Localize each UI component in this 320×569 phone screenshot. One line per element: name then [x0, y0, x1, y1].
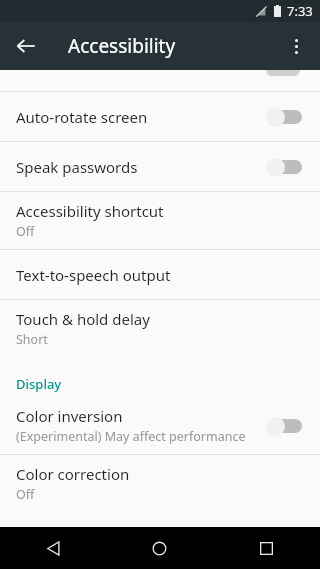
staticText: (Experimental) May affect performance [16, 428, 246, 445]
button[interactable]: Speak passwords [0, 142, 320, 191]
staticText: Auto-rotate screen [16, 107, 148, 127]
staticText: Touch & hold delay [16, 309, 150, 329]
button[interactable]: Auto-rotate screen [0, 92, 320, 141]
button[interactable]: More options [274, 24, 318, 68]
button[interactable]: Home [106, 527, 213, 569]
button[interactable]: Recent apps [213, 527, 320, 569]
staticText: Short [16, 331, 48, 348]
staticText: Color inversion [16, 406, 123, 426]
button[interactable]: Touch & hold delay [0, 300, 320, 357]
button[interactable]: Toggle [266, 157, 302, 177]
button[interactable]: Back [4, 24, 48, 68]
button[interactable]: Color inversion [0, 397, 320, 454]
button[interactable] [0, 70, 320, 92]
staticText: Accessibility shortcut [16, 201, 164, 221]
staticText: Off [16, 486, 35, 503]
button[interactable]: Toggle [266, 416, 302, 436]
staticText: Display [16, 375, 62, 393]
button[interactable]: Text-to-speech output [0, 250, 320, 299]
button[interactable]: Toggle [266, 107, 302, 127]
staticText: Color correction [16, 464, 130, 484]
staticText: Off [16, 223, 35, 240]
button[interactable]: Back [0, 527, 106, 569]
staticText: 7:33 [287, 2, 313, 20]
button[interactable]: Accessibility shortcut [0, 192, 320, 249]
staticText: Speak passwords [16, 157, 138, 177]
button[interactable]: Color correction [0, 455, 320, 512]
staticText: Accessibility [68, 33, 176, 59]
staticText: Text-to-speech output [16, 265, 171, 285]
